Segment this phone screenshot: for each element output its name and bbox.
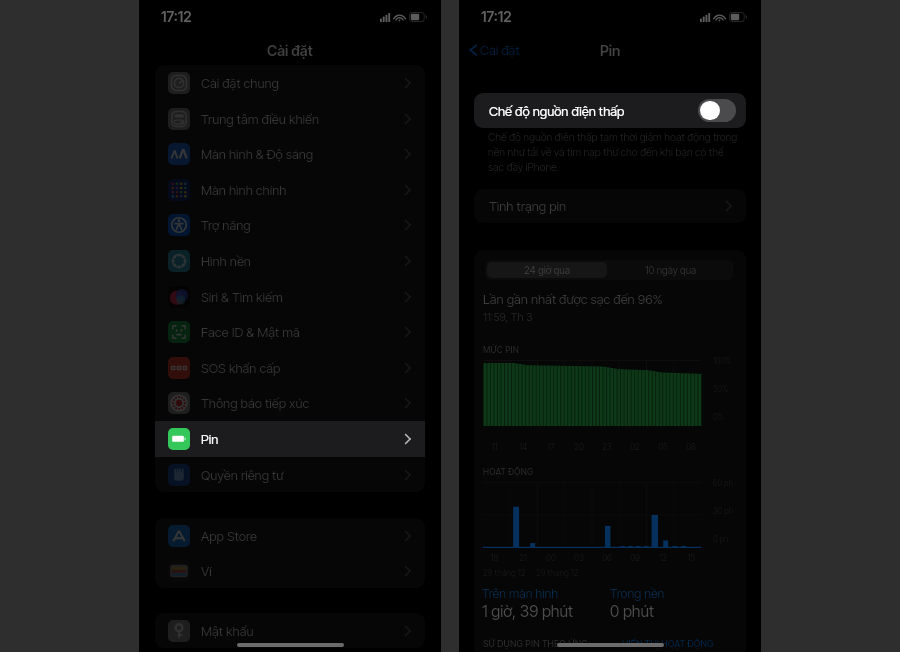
- button[interactable]: Face ID & Mật mã: [155, 314, 425, 350]
- staticText: Face ID & Mật mã: [201, 324, 404, 340]
- staticText: Mật khẩu: [201, 623, 404, 639]
- button[interactable]: Pin: [155, 421, 425, 457]
- button[interactable]: Ví: [155, 553, 425, 588]
- staticText: 05: [649, 442, 677, 452]
- staticText: 11:59, Th 3: [483, 310, 533, 323]
- button[interactable]: Mật khẩu: [155, 613, 425, 648]
- button[interactable]: Chế độ nguồn điện thấp: [474, 93, 746, 128]
- staticText: 06: [593, 553, 621, 563]
- staticText: 50%: [713, 384, 729, 394]
- staticText: Trong nền: [610, 586, 665, 601]
- button[interactable]: Cài đặt chung: [155, 65, 425, 101]
- staticText: Siri & Tìm kiếm: [201, 289, 404, 305]
- button[interactable]: Trợ năng: [155, 207, 425, 243]
- button[interactable]: 24 giờ qua: [487, 262, 607, 278]
- staticText: 100%: [713, 356, 732, 366]
- staticText: 1 giờ, 39 phút: [482, 602, 574, 621]
- staticText: 23: [593, 442, 621, 452]
- staticText: Hình nền: [201, 253, 404, 269]
- staticText: 24 giờ qua: [524, 264, 571, 276]
- button[interactable]: Màn hình chính: [155, 172, 425, 208]
- button[interactable]: SOS khẩn cấp: [155, 350, 425, 386]
- staticText: SOS khẩn cấp: [201, 360, 404, 376]
- staticText: Cài đặt chung: [201, 75, 404, 91]
- staticText: 0 phút: [610, 602, 655, 621]
- button[interactable]: Tình trạng pin: [474, 189, 746, 223]
- button[interactable]: Hình nền: [155, 243, 425, 279]
- button[interactable]: App Store: [155, 518, 425, 553]
- staticText: Ví: [201, 563, 404, 579]
- staticText: Trợ năng: [201, 217, 404, 233]
- staticText: Tình trạng pin: [489, 198, 567, 214]
- staticText: Quyền riêng tư: [201, 467, 404, 483]
- staticText: 10 ngày qua: [645, 264, 697, 276]
- button[interactable]: Back to Cài đặt: [469, 42, 520, 58]
- staticText: 14: [509, 442, 537, 452]
- staticText: Trên màn hình: [482, 586, 559, 601]
- button[interactable]: Thông báo tiếp xúc: [155, 385, 425, 421]
- staticText: Pin: [600, 42, 621, 60]
- staticText: HIỂN THỊ HOẠT ĐỘNG: [622, 638, 714, 649]
- button[interactable]: Siri & Tìm kiếm: [155, 279, 425, 315]
- staticText: Chế độ nguồn điện thấp: [489, 103, 625, 119]
- staticText: Màn hình chính: [201, 182, 404, 198]
- staticText: Cài đặt: [267, 42, 313, 60]
- staticText: App Store: [201, 528, 404, 544]
- staticText: 0 ph: [713, 534, 729, 544]
- staticText: 08: [677, 442, 705, 452]
- staticText: 28 tháng 12: [483, 568, 526, 578]
- staticText: 17:12: [161, 8, 192, 25]
- staticText: Chế độ nguồn điện thấp tạm thời giảm hoạ…: [488, 131, 740, 174]
- staticText: Pin: [201, 431, 404, 447]
- staticText: 60 ph: [713, 478, 733, 488]
- staticText: 09: [621, 553, 649, 563]
- staticText: MỨC PIN: [483, 345, 520, 355]
- staticText: 29 tháng 12: [536, 568, 579, 578]
- button[interactable]: Trung tâm điều khiển: [155, 101, 425, 137]
- staticText: Màn hình & Độ sáng: [201, 146, 404, 162]
- staticText: Lần gần nhất được sạc đến 96%: [483, 291, 663, 307]
- staticText: Cài đặt: [480, 42, 520, 58]
- button[interactable]: Quyền riêng tư: [155, 457, 425, 492]
- staticText: HOẠT ĐỘNG: [483, 467, 534, 477]
- button[interactable]: 10 ngày qua: [609, 260, 733, 280]
- staticText: 17:12: [481, 8, 512, 25]
- staticText: Trung tâm điều khiển: [201, 111, 404, 127]
- staticText: 30 ph: [713, 506, 734, 516]
- staticText: 18: [480, 553, 509, 563]
- staticText: SỬ DỤNG PIN THEO ỨNG: [483, 638, 588, 649]
- staticText: 0%: [713, 412, 724, 422]
- button[interactable]: Màn hình & Độ sáng: [155, 136, 425, 172]
- staticText: Thông báo tiếp xúc: [201, 395, 404, 411]
- staticText: 02: [621, 442, 649, 452]
